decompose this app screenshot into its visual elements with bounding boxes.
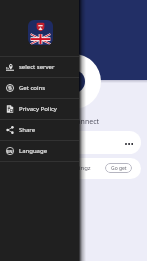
- button[interactable]: EN: [0, 141, 79, 161]
- staticText: Tap to connect: [51, 117, 100, 127]
- button[interactable]: Get coins: [0, 78, 79, 98]
- staticText: EN: [7, 149, 13, 154]
- staticText: Get free pingz: [51, 164, 91, 172]
- staticText: Share: [19, 126, 36, 134]
- button[interactable]: select server: [0, 57, 79, 77]
- staticText: Get coins: [19, 84, 46, 92]
- staticText: Language: [19, 147, 48, 155]
- button[interactable]: App icon: [28, 20, 53, 45]
- button[interactable]: Go get: [105, 163, 132, 173]
- staticText: Go get: [111, 165, 127, 172]
- button[interactable]: Privacy Policy: [0, 99, 79, 119]
- button[interactable]: More options: [6, 131, 141, 154]
- staticText: Privacy Policy: [19, 105, 57, 113]
- button[interactable]: Share: [0, 120, 79, 140]
- staticText: select server: [19, 63, 55, 71]
- button[interactable]: Connect: [46, 54, 101, 109]
